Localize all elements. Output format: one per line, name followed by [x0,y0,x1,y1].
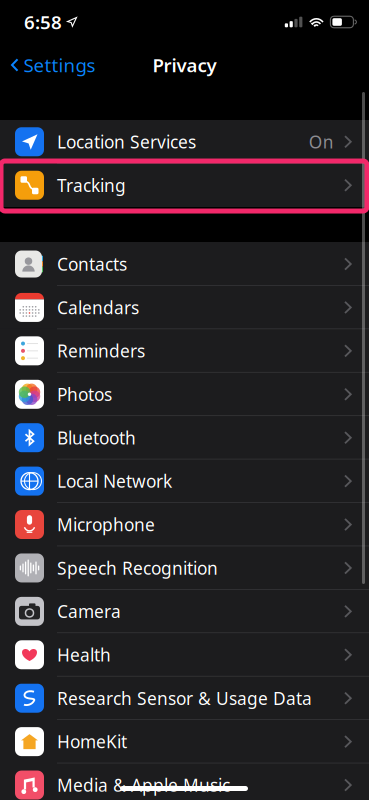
staticText: Photos [57,383,112,406]
staticText: Tracking [57,174,126,197]
button[interactable]: Health [0,633,369,677]
button[interactable]: Calendars [0,285,369,329]
button[interactable]: Local Network [0,459,369,503]
staticText: On [309,130,334,153]
staticText: Microphone [57,513,155,536]
button[interactable]: Location Services [0,120,369,163]
button[interactable]: Bluetooth [0,416,369,460]
staticText: Bluetooth [57,426,136,449]
staticText: Health [57,643,111,666]
staticText: Speech Recognition [57,556,218,579]
button[interactable]: HomeKit [0,720,369,764]
button[interactable]: Contacts [0,242,369,286]
staticText: Camera [57,600,121,623]
staticText: Media & Apple Music [57,773,230,796]
button[interactable]: Camera [0,589,369,633]
staticText: Privacy [152,53,216,77]
staticText: HomeKit [57,730,127,753]
staticText: Calendars [57,296,139,319]
staticText: 6:58 [24,10,62,34]
staticText: Settings [23,53,95,77]
button[interactable]: Photos [0,372,369,416]
button[interactable]: Reminders [0,329,369,373]
staticText: Local Network [57,470,172,493]
button[interactable]: Settings [0,45,103,85]
staticText: Contacts [57,252,127,275]
button[interactable]: Media & Apple Music [0,763,369,800]
staticText: Reminders [57,339,145,362]
button[interactable]: Research Sensor & Usage Data [0,676,369,720]
staticText: Research Sensor & Usage Data [57,687,312,710]
button[interactable]: Tracking [0,163,369,207]
button[interactable]: Microphone [0,502,369,546]
button[interactable]: Speech Recognition [0,546,369,590]
staticText: Location Services [57,130,196,153]
